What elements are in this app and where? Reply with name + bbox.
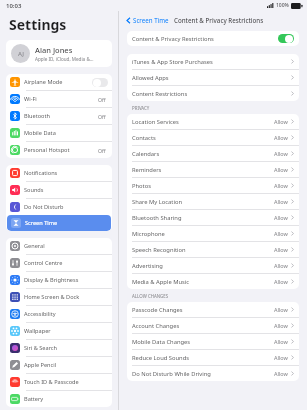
staticText: Allow bbox=[274, 370, 288, 377]
staticText: Bluetooth Sharing bbox=[132, 214, 274, 222]
staticText: Allow bbox=[274, 278, 288, 285]
button[interactable]: Share My Location bbox=[127, 194, 299, 209]
button[interactable]: Microphone bbox=[127, 226, 299, 241]
staticText: Mobile Data Changes bbox=[132, 338, 274, 346]
button[interactable]: Battery bbox=[6, 391, 112, 407]
staticText: Media & Apple Music bbox=[132, 278, 274, 286]
button[interactable]: Touch ID & Passcode bbox=[6, 374, 112, 390]
staticText: Microphone bbox=[132, 230, 274, 238]
staticText: General bbox=[24, 242, 108, 250]
button[interactable]: Content Restrictions bbox=[127, 86, 299, 101]
button[interactable]: Screen Time bbox=[7, 215, 111, 231]
staticText: Display & Brightness bbox=[24, 276, 108, 284]
staticText: Allow bbox=[274, 306, 288, 313]
staticText: Apple ID, iCloud, Media &... bbox=[35, 56, 94, 62]
button[interactable]: Bluetooth Sharing bbox=[127, 210, 299, 225]
staticText: Off bbox=[98, 147, 106, 154]
button[interactable]: Content & Privacy Restrictions bbox=[127, 31, 299, 46]
staticText: Allow bbox=[274, 166, 288, 173]
staticText: Settings bbox=[9, 15, 67, 34]
staticText: Wi-Fi bbox=[24, 95, 98, 103]
staticText: Accessibility bbox=[24, 310, 108, 318]
staticText: Contacts bbox=[132, 134, 274, 142]
button[interactable]: Wallpaper bbox=[6, 323, 112, 339]
button[interactable]: Reduce Loud Sounds bbox=[127, 350, 299, 365]
staticText: Control Centre bbox=[24, 259, 108, 267]
staticText: Screen Time bbox=[25, 219, 107, 227]
staticText: Content & Privacy Restrictions bbox=[132, 35, 278, 43]
staticText: Allowed Apps bbox=[132, 74, 291, 82]
staticText: Allow bbox=[274, 262, 288, 269]
staticText: Allow bbox=[274, 322, 288, 329]
button[interactable]: AJ bbox=[6, 40, 112, 67]
button[interactable]: Wi-Fi bbox=[6, 91, 112, 107]
staticText: Advertising bbox=[132, 262, 274, 270]
button[interactable]: Airplane Mode bbox=[6, 74, 112, 90]
button[interactable]: Personal Hotspot bbox=[6, 142, 112, 158]
button[interactable]: Siri & Search bbox=[6, 340, 112, 356]
staticText: iTunes & App Store Purchases bbox=[132, 58, 291, 66]
staticText: Bluetooth bbox=[24, 112, 98, 120]
staticText: Allow bbox=[274, 134, 288, 141]
staticText: Allow bbox=[274, 354, 288, 361]
staticText: Personal Hotspot bbox=[24, 146, 98, 154]
button[interactable]: Media & Apple Music bbox=[127, 274, 299, 289]
button[interactable]: Bluetooth bbox=[6, 108, 112, 124]
button[interactable]: Advertising bbox=[127, 258, 299, 273]
staticText: Reduce Loud Sounds bbox=[132, 354, 274, 362]
button[interactable]: Mobile Data bbox=[6, 125, 112, 141]
staticText: Allow bbox=[274, 198, 288, 205]
staticText: Allow bbox=[274, 246, 288, 253]
button[interactable]: Allowed Apps bbox=[127, 70, 299, 85]
staticText: Mobile Data bbox=[24, 129, 108, 137]
staticText: Speech Recognition bbox=[132, 246, 274, 254]
staticText: 100% bbox=[276, 2, 289, 9]
button[interactable]: Screen Time bbox=[125, 15, 170, 25]
button[interactable]: Home Screen & Dock bbox=[6, 289, 112, 305]
staticText: Notifications bbox=[24, 169, 108, 177]
staticText: Allow bbox=[274, 230, 288, 237]
staticText: Passcode Changes bbox=[132, 306, 274, 314]
staticText: Reminders bbox=[132, 166, 274, 174]
staticText: Allow bbox=[274, 118, 288, 125]
button[interactable]: Notifications bbox=[6, 165, 112, 181]
staticText: Touch ID & Passcode bbox=[24, 378, 108, 386]
staticText: Allow bbox=[274, 182, 288, 189]
staticText: Content Restrictions bbox=[132, 90, 291, 98]
button[interactable]: General bbox=[6, 238, 112, 254]
staticText: Home Screen & Dock bbox=[24, 293, 108, 301]
button[interactable]: Account Changes bbox=[127, 318, 299, 333]
button[interactable]: Do Not Disturb bbox=[6, 199, 112, 215]
staticText: Alan Jones bbox=[35, 45, 73, 55]
button[interactable]: Toggle bbox=[92, 78, 108, 87]
button[interactable]: Toggle bbox=[278, 34, 294, 43]
button[interactable]: Mobile Data Changes bbox=[127, 334, 299, 349]
button[interactable]: Apple Pencil bbox=[6, 357, 112, 373]
staticText: Off bbox=[98, 113, 106, 120]
staticText: Allow bbox=[274, 338, 288, 345]
staticText: Allow bbox=[274, 214, 288, 221]
button[interactable]: Reminders bbox=[127, 162, 299, 177]
button[interactable]: Passcode Changes bbox=[127, 302, 299, 317]
button[interactable]: Speech Recognition bbox=[127, 242, 299, 257]
button[interactable]: Contacts bbox=[127, 130, 299, 145]
button[interactable]: Control Centre bbox=[6, 255, 112, 271]
staticText: Calendars bbox=[132, 150, 274, 158]
button[interactable]: Display & Brightness bbox=[6, 272, 112, 288]
staticText: PRIVACY bbox=[132, 105, 150, 111]
staticText: Content & Privacy Restrictions bbox=[174, 16, 264, 24]
staticText: AJ bbox=[18, 50, 24, 58]
staticText: Wallpaper bbox=[24, 327, 108, 335]
staticText: Siri & Search bbox=[24, 344, 108, 352]
button[interactable]: Sounds bbox=[6, 182, 112, 198]
button[interactable]: Location Services bbox=[127, 114, 299, 129]
button[interactable]: Photos bbox=[127, 178, 299, 193]
staticText: Account Changes bbox=[132, 322, 274, 330]
staticText: 10:03 bbox=[6, 2, 22, 10]
staticText: Do Not Disturb While Driving bbox=[132, 370, 274, 378]
button[interactable]: iTunes & App Store Purchases bbox=[127, 54, 299, 69]
button[interactable]: Accessibility bbox=[6, 306, 112, 322]
staticText: ALLOW CHANGES bbox=[132, 293, 169, 299]
button[interactable]: Calendars bbox=[127, 146, 299, 161]
button[interactable]: Do Not Disturb While Driving bbox=[127, 366, 299, 381]
